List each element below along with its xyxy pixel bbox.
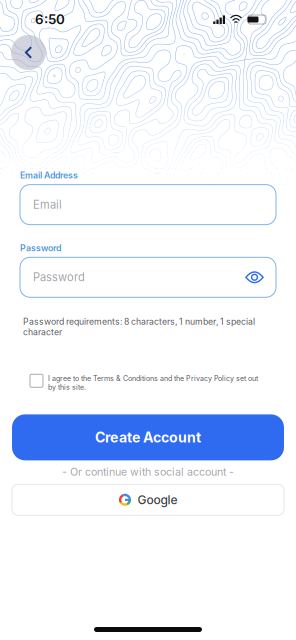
staticText: - Or continue with social account - [62, 465, 234, 478]
staticText: Password [33, 271, 85, 284]
staticText: 6:50 [35, 11, 65, 27]
button[interactable]: Google [12, 484, 284, 515]
button[interactable]: Back [11, 35, 46, 70]
staticText: Password [20, 243, 61, 253]
staticText: I agree to the Terms & Conditions and th… [48, 374, 258, 391]
staticText: Email [33, 198, 62, 211]
button[interactable]: I agree to the Terms & Conditions and th… [0, 374, 296, 391]
button[interactable]: Show password [245, 270, 264, 284]
staticText: Create Account [95, 429, 201, 446]
button[interactable]: Create Account [12, 414, 284, 460]
staticText: Email Address [20, 170, 78, 181]
staticText: Google [137, 492, 177, 507]
staticText: Password requirements: 8 characters, 1 n… [23, 316, 255, 337]
